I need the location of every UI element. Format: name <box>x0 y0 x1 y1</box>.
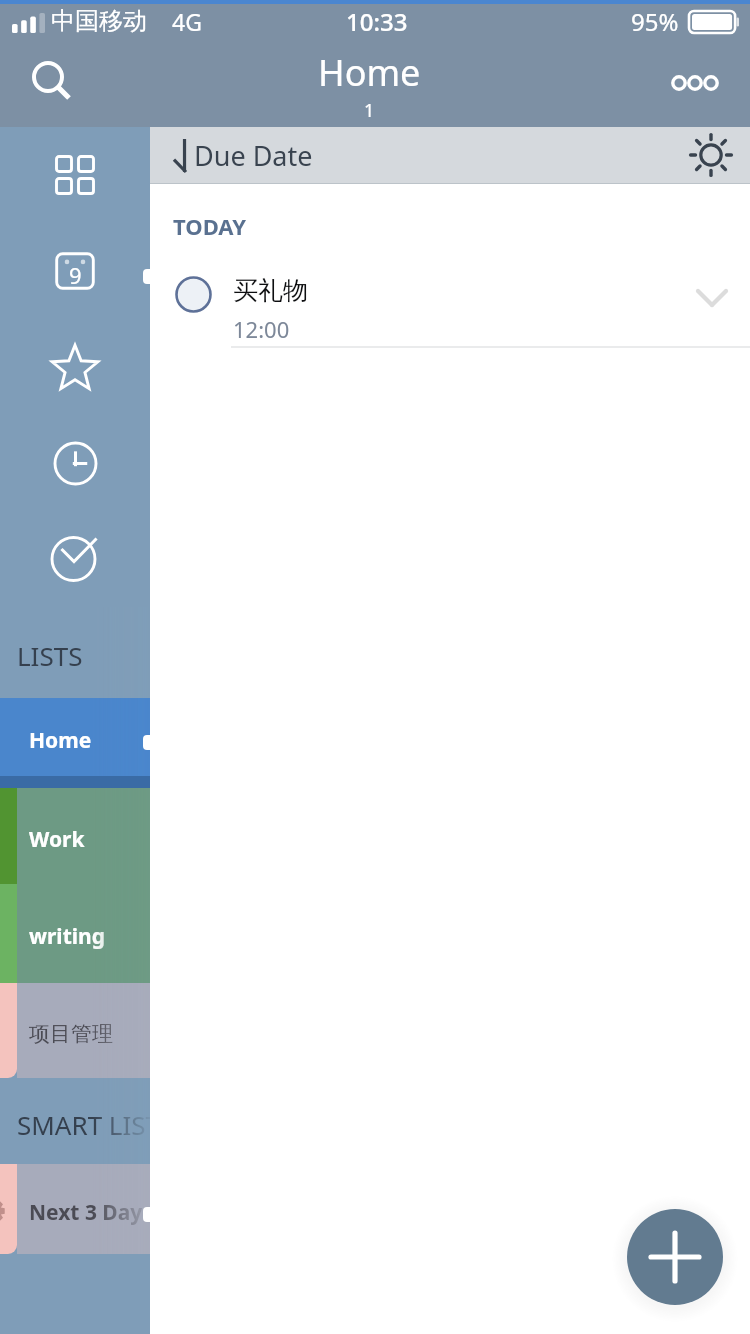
button[interactable]: Next 3 Days <box>0 1164 150 1254</box>
staticText: 12:00 <box>233 314 290 344</box>
button[interactable]: Scheduled <box>0 415 150 511</box>
staticText: Next 3 Days <box>29 1198 150 1227</box>
button[interactable]: Completed <box>0 511 150 607</box>
button[interactable]: More options <box>658 40 750 127</box>
button[interactable]: Theme <box>686 130 736 180</box>
button[interactable]: Search <box>0 40 92 127</box>
staticText: LISTS <box>17 638 83 673</box>
button[interactable]: Work <box>0 788 150 884</box>
staticText: 10:33 <box>346 5 408 38</box>
button[interactable]: Summary <box>0 127 150 223</box>
button[interactable]: Starred <box>0 319 150 415</box>
staticText: Home <box>29 726 92 755</box>
staticText: writing <box>29 922 105 951</box>
staticText: 4G <box>172 6 202 37</box>
button[interactable]: Add task <box>627 1209 723 1305</box>
staticText: 项目管理 <box>29 1021 113 1047</box>
staticText: 买礼物 <box>233 275 308 306</box>
button[interactable]: writing <box>0 884 150 983</box>
button[interactable]: 买礼物 <box>150 250 750 348</box>
staticText: 中国移动 <box>51 6 147 36</box>
staticText: Due Date <box>194 137 313 174</box>
staticText: 95% <box>631 5 679 38</box>
button[interactable]: Calendar <box>0 223 150 319</box>
staticText: 9 <box>69 260 82 290</box>
staticText: 1 <box>364 98 375 123</box>
button[interactable]: 项目管理 <box>0 983 150 1078</box>
staticText: Home <box>318 48 421 97</box>
staticText: Work <box>29 825 85 854</box>
button[interactable]: Home <box>0 698 150 776</box>
staticText: SMART LISTS <box>17 1107 150 1142</box>
button[interactable]: Expand task <box>684 270 740 326</box>
staticText: TODAY <box>173 211 246 241</box>
